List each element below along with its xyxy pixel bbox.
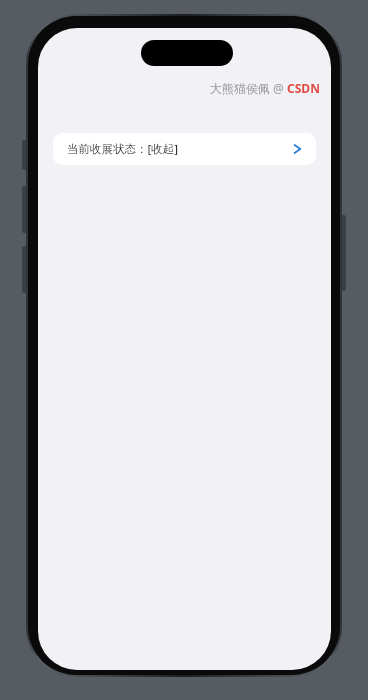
other: 展开 bbox=[293, 142, 302, 156]
button[interactable]: 当前收展状态：[收起] bbox=[53, 133, 316, 165]
staticText: 大熊猫侯佩 @ CSDN bbox=[210, 80, 320, 96]
staticText: 当前收展状态：[收起] bbox=[67, 141, 179, 157]
